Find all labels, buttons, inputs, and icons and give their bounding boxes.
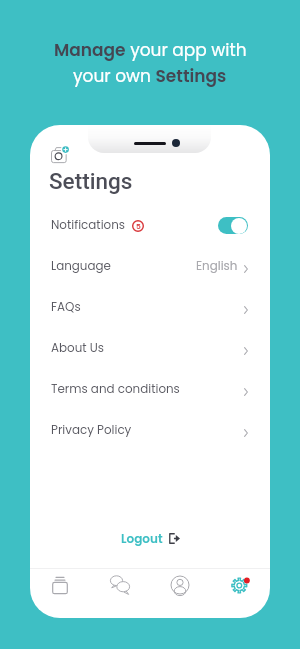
button[interactable]: Settings [210, 569, 270, 601]
button[interactable]: Change profile photo [50, 144, 69, 163]
button[interactable]: Messages [90, 569, 150, 601]
staticText: About Us [51, 340, 105, 357]
staticText: FAQs [51, 299, 81, 316]
button[interactable]: Notifications [30, 205, 270, 246]
staticText: Logout [121, 530, 163, 547]
button[interactable]: Terms and conditions [30, 369, 270, 410]
staticText: Language [51, 258, 111, 275]
button[interactable]: Privacy Policy [30, 410, 270, 451]
staticText: Terms and conditions [51, 381, 180, 398]
staticText: Manage your app with [54, 38, 247, 62]
button[interactable]: Language [30, 246, 270, 287]
button[interactable]: Logout [30, 527, 270, 549]
staticText: Privacy Policy [51, 422, 132, 439]
button[interactable]: Wallet [30, 569, 90, 601]
staticText: 5 [136, 221, 141, 231]
staticText: Notifications [51, 217, 125, 234]
staticText: English [196, 258, 238, 275]
button[interactable]: Profile [150, 569, 210, 601]
button[interactable]: FAQs [30, 287, 270, 328]
staticText: Settings [49, 168, 133, 194]
staticText: your own Settings [73, 64, 227, 88]
button[interactable]: About Us [30, 328, 270, 369]
